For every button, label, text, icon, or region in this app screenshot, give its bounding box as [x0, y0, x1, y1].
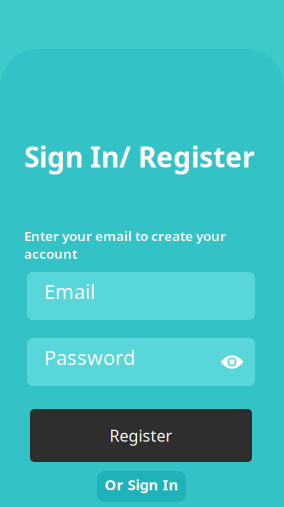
staticText: Password [44, 344, 135, 371]
staticText: Sign In/ Register [24, 138, 255, 175]
button[interactable]: Password [27, 338, 255, 386]
staticText: Email [44, 278, 95, 305]
button[interactable]: Show password [215, 345, 249, 379]
button[interactable]: Register [30, 409, 252, 462]
staticText: Or Sign In [104, 475, 178, 494]
button[interactable]: Or Sign In [97, 471, 186, 502]
staticText: Register [109, 425, 172, 446]
staticText: Enter your email to create your account [24, 227, 226, 262]
button[interactable]: Email [27, 272, 255, 320]
